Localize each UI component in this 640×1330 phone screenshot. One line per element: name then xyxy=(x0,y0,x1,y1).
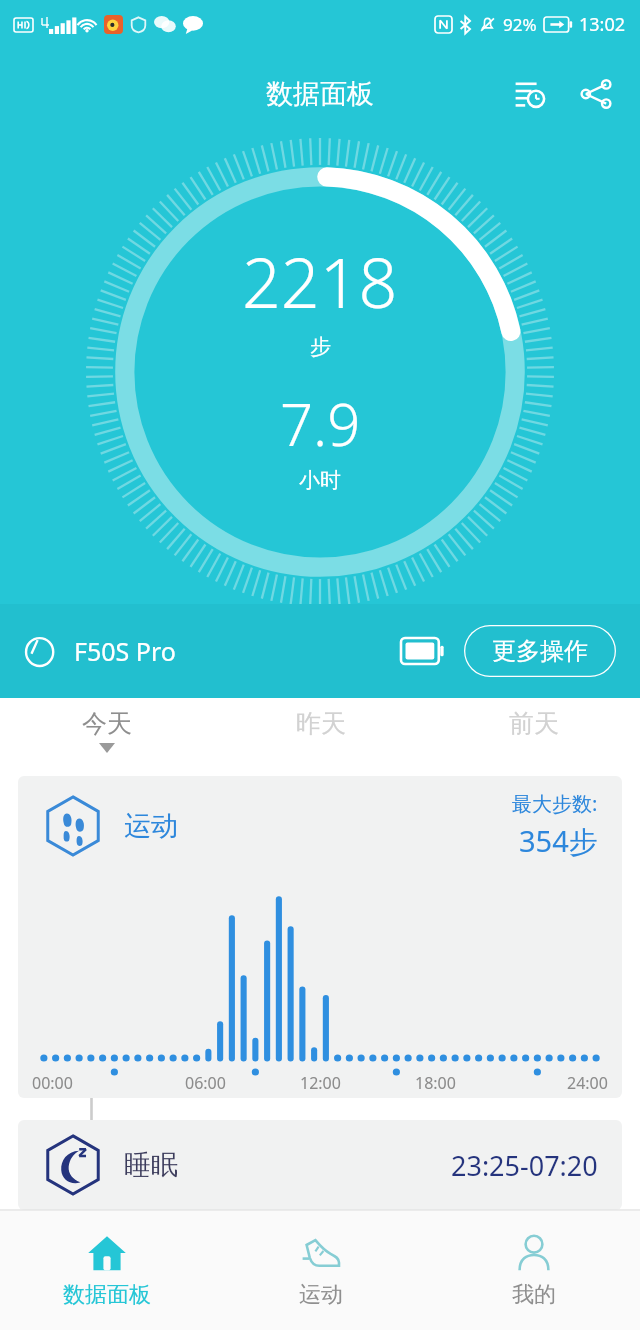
staticText: 运动 xyxy=(124,809,178,843)
button[interactable]: 我的 xyxy=(427,1211,640,1330)
staticText: 小时 xyxy=(299,467,341,493)
staticText: 00:00 xyxy=(32,1072,73,1094)
button[interactable]: 运动 xyxy=(214,1211,427,1330)
staticText: 步 xyxy=(310,334,331,360)
staticText: 18:00 xyxy=(415,1072,456,1094)
staticText: 我的 xyxy=(512,1281,556,1309)
button[interactable]: History xyxy=(508,72,552,116)
staticText: 今天 xyxy=(82,708,132,739)
staticText: 昨天 xyxy=(296,708,346,739)
staticText: 06:00 xyxy=(185,1072,226,1094)
staticText: 12:00 xyxy=(300,1072,341,1094)
button[interactable]: F50S Pro xyxy=(24,634,176,668)
staticText: 354步 xyxy=(519,821,598,861)
button[interactable]: 更多操作 xyxy=(464,625,616,677)
staticText: 睡眠 xyxy=(124,1148,178,1182)
staticText: 前天 xyxy=(509,708,559,739)
staticText: 24:00 xyxy=(567,1072,608,1094)
staticText: 更多操作 xyxy=(492,636,588,666)
staticText: 运动 xyxy=(299,1281,343,1309)
button[interactable]: 运动 xyxy=(18,776,622,1098)
staticText: 数据面板 xyxy=(63,1281,151,1309)
staticText: 2218 xyxy=(242,235,398,328)
staticText: 7.9 xyxy=(280,384,361,463)
staticText: 23:25-07:20 xyxy=(451,1147,598,1184)
button[interactable]: 数据面板 xyxy=(0,1211,214,1330)
staticText: F50S Pro xyxy=(74,634,176,668)
staticText: 13:02 xyxy=(579,12,626,37)
button[interactable]: 睡眠 xyxy=(18,1120,622,1210)
staticText: 最大步数: xyxy=(512,790,598,817)
button[interactable]: 前天 xyxy=(427,698,640,768)
button[interactable]: 昨天 xyxy=(214,698,427,768)
button[interactable]: Share xyxy=(574,72,618,116)
button[interactable]: Battery xyxy=(396,631,448,671)
staticText: 数据面板 xyxy=(266,77,374,111)
staticText: 92% xyxy=(503,13,537,36)
button[interactable]: 今天 xyxy=(0,698,214,768)
